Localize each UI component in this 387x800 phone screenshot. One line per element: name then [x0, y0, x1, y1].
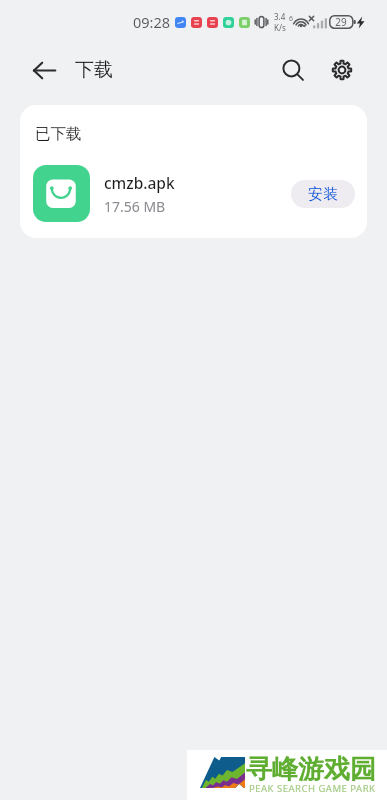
button[interactable]: Back — [20, 46, 68, 94]
staticText: 下载 — [75, 58, 113, 82]
staticText: 已下载 — [35, 124, 82, 144]
staticText: 6 — [289, 14, 294, 24]
staticText: 17.56 MB — [104, 197, 166, 216]
staticText: 寻峰游戏园 — [246, 753, 376, 786]
button[interactable]: 安装 — [291, 180, 355, 208]
button[interactable]: Settings — [318, 46, 366, 94]
staticText: PEAK SEARCH GAME PARK — [249, 782, 376, 795]
staticText: 29 — [335, 15, 347, 29]
button[interactable]: Search — [269, 46, 317, 94]
staticText: 3.4 — [274, 11, 286, 22]
staticText: cmzb.apk — [104, 172, 175, 193]
staticText: 09:28 — [133, 12, 171, 32]
staticText: 安装 — [308, 185, 338, 204]
staticText: K/s — [274, 22, 286, 33]
